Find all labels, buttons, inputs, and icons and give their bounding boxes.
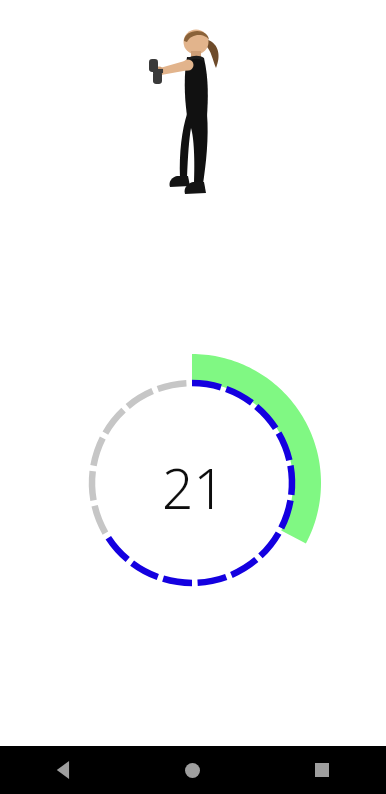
- staticText: 21: [162, 450, 225, 525]
- button[interactable]: [0, 0, 386, 215]
- button[interactable]: Home: [128, 746, 257, 794]
- button[interactable]: Recent apps: [257, 746, 386, 794]
- button[interactable]: Back: [0, 746, 128, 794]
